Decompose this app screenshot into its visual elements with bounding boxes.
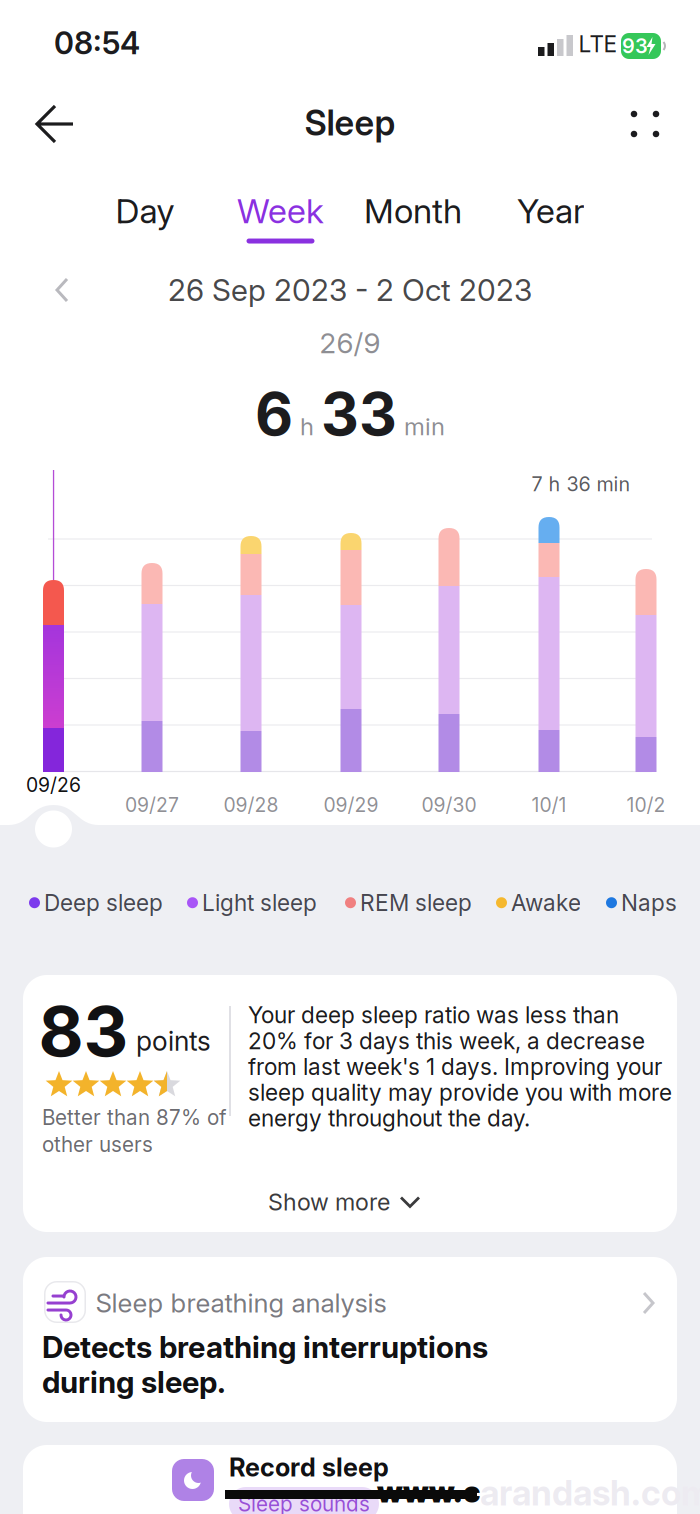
- staticText: 93: [622, 34, 648, 58]
- staticText: 09/27: [125, 793, 179, 817]
- staticText: Light sleep: [202, 889, 317, 916]
- button[interactable]: More: [622, 102, 668, 146]
- button[interactable]: Back: [33, 104, 77, 144]
- staticText: Sleep sounds: [238, 1491, 370, 1514]
- staticText: h: [300, 412, 314, 441]
- staticText: Show more: [268, 1188, 390, 1216]
- staticText: during sleep.: [42, 1364, 226, 1400]
- button[interactable]: Show more: [268, 1188, 420, 1216]
- staticText: Naps: [621, 889, 677, 916]
- button[interactable]: Record sleep: [172, 1459, 214, 1501]
- staticText: other users: [42, 1132, 153, 1157]
- staticText: 09/28: [223, 793, 278, 817]
- staticText: Awake: [511, 889, 581, 916]
- staticText: 26/9: [319, 326, 380, 360]
- staticText: 6: [255, 378, 293, 449]
- staticText: 10/1: [531, 793, 566, 817]
- staticText: arandash.com: [480, 1472, 700, 1514]
- staticText: points: [136, 1025, 211, 1057]
- staticText: Month: [364, 190, 462, 231]
- staticText: Week: [237, 190, 324, 231]
- staticText: Year: [517, 190, 585, 231]
- button[interactable]: Day: [115, 190, 174, 231]
- staticText: Sleep: [304, 102, 395, 144]
- staticText: 7 h 36 min: [531, 472, 630, 496]
- staticText: 09/30: [421, 793, 476, 817]
- staticText: 20% for 3 days this week, a decrease: [248, 1027, 645, 1055]
- staticText: sleep quality may provide you with more: [248, 1079, 672, 1106]
- staticText: 83: [38, 989, 128, 1073]
- staticText: Deep sleep: [44, 889, 163, 916]
- staticText: REM sleep: [360, 889, 472, 916]
- staticText: 09/26: [26, 773, 81, 797]
- staticText: energy throughout the day.: [248, 1105, 530, 1132]
- button[interactable]: Sleep breathing analysis: [0, 0, 700, 1514]
- button[interactable]: Year: [517, 190, 585, 231]
- staticText: 10/2: [626, 793, 665, 817]
- staticText: from last week's 1 days. Improving your: [248, 1053, 662, 1080]
- staticText: Day: [115, 190, 174, 231]
- staticText: 33: [321, 378, 397, 449]
- staticText: Better than 87% of: [42, 1105, 227, 1130]
- staticText: 26 Sep 2023 - 2 Oct 2023: [168, 272, 532, 308]
- staticText: www.c: [377, 1474, 480, 1509]
- button[interactable]: Month: [364, 190, 462, 231]
- staticText: Sleep breathing analysis: [95, 1287, 386, 1319]
- staticText: Record sleep: [229, 1452, 389, 1483]
- staticText: min: [404, 412, 445, 441]
- staticText: Your deep sleep ratio was less than: [248, 1001, 619, 1029]
- button[interactable]: Previous week: [55, 277, 71, 303]
- staticText: 08:54: [54, 24, 140, 61]
- staticText: LTE: [578, 30, 617, 58]
- staticText: Detects breathing interruptions: [42, 1329, 488, 1365]
- button[interactable]: Week: [235, 191, 325, 251]
- button[interactable]: Sleep sounds: [229, 1487, 379, 1514]
- staticText: 09/29: [323, 793, 378, 817]
